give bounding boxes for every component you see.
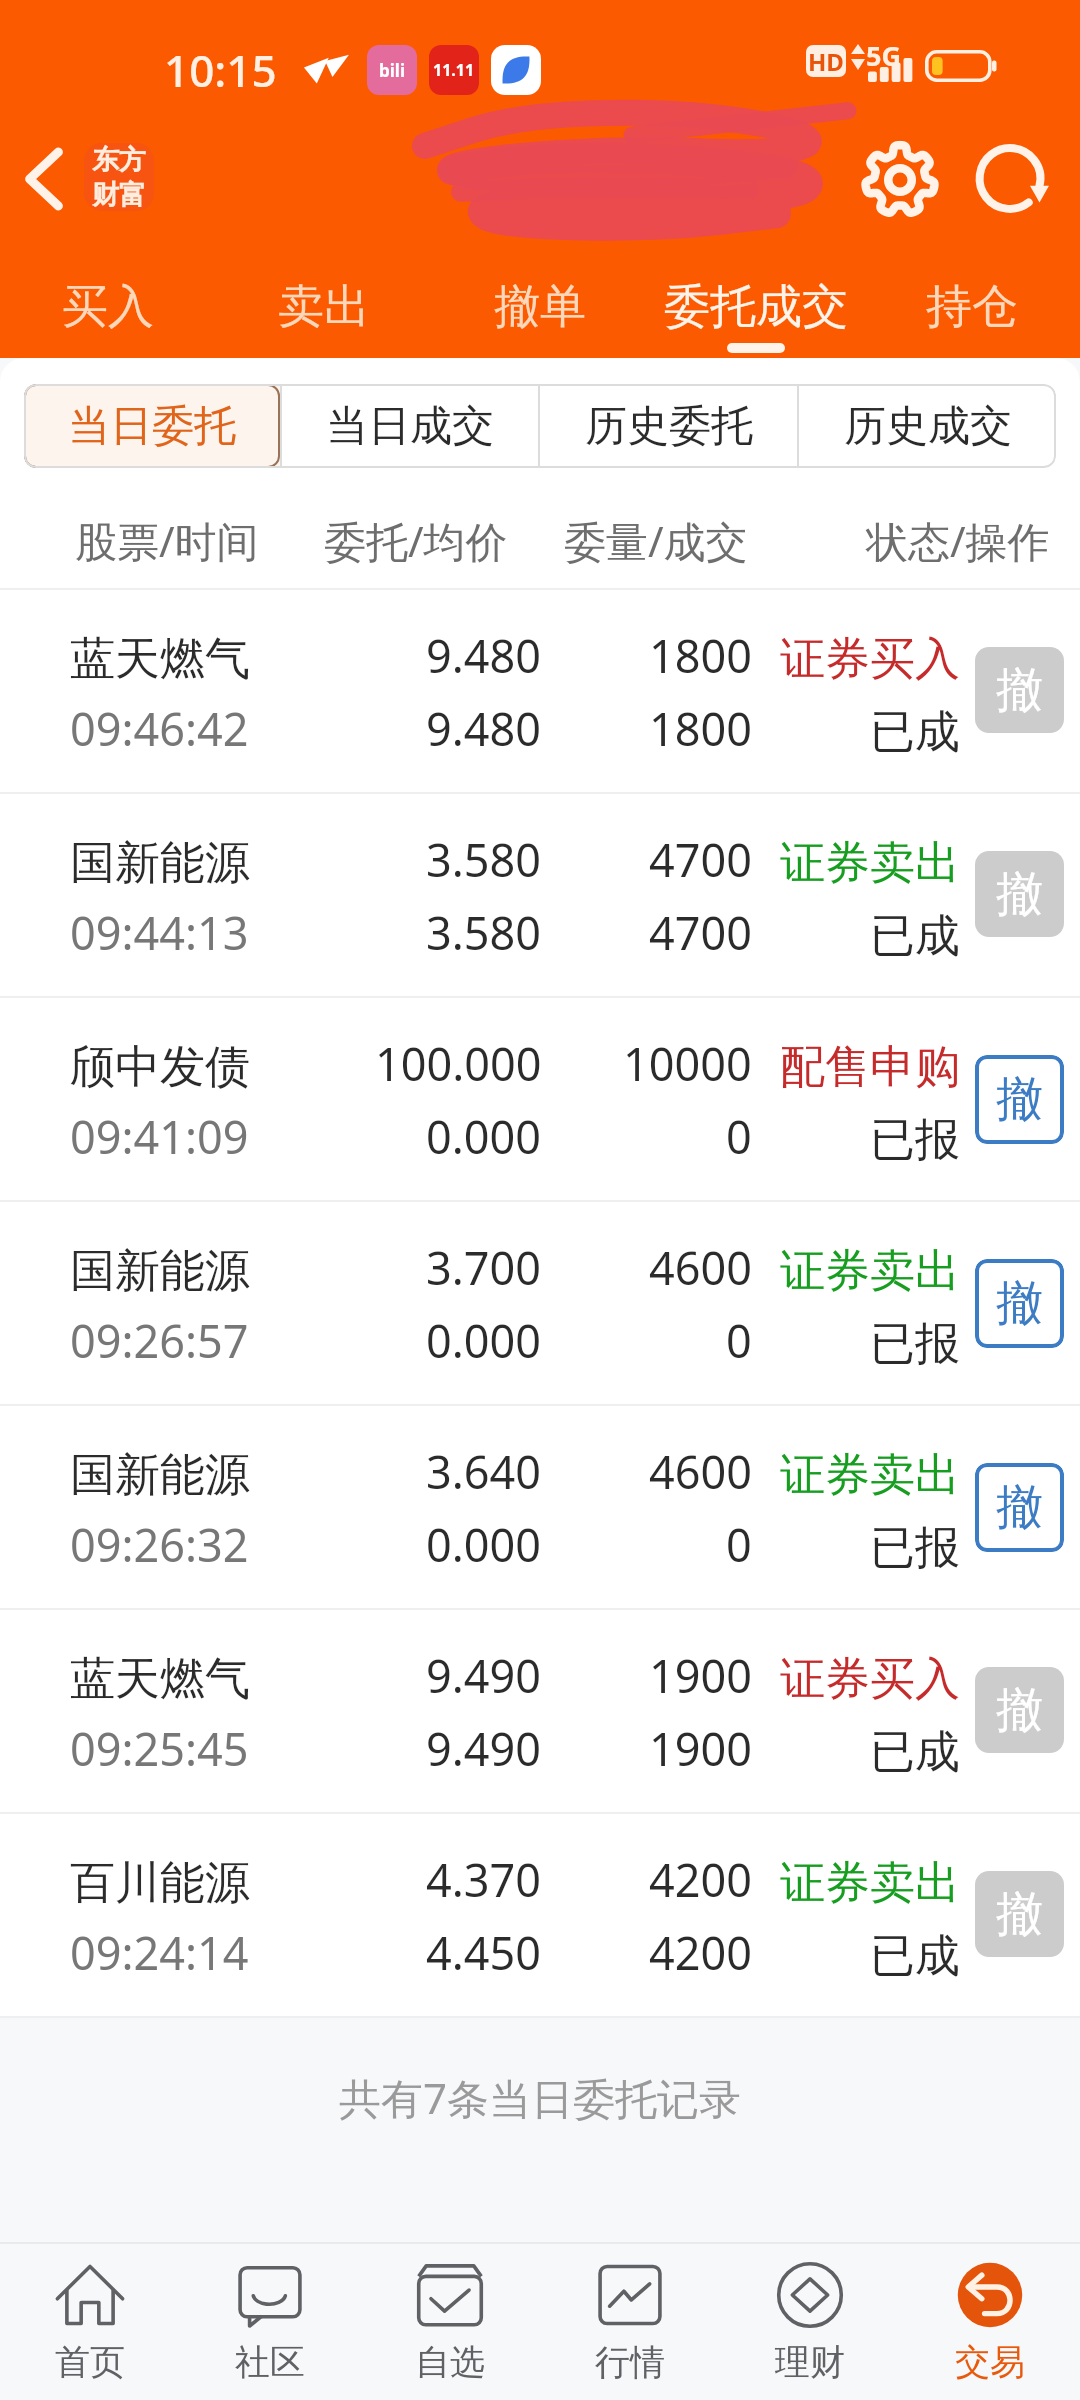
staticText: 百川能源 (70, 1855, 250, 1912)
button[interactable]: 当日成交 (282, 384, 538, 468)
staticText: 撤 (996, 1070, 1043, 1129)
staticText: 证券买入 (780, 631, 960, 688)
staticText: 4600 (649, 1441, 752, 1502)
staticText: 证券卖出 (780, 1855, 960, 1912)
staticText: 9.480 (426, 698, 542, 759)
staticText: 东方 (92, 143, 146, 177)
staticText: 已报 (870, 1520, 960, 1577)
button[interactable]: 历史成交 (799, 384, 1056, 468)
staticText: 国新能源 (70, 1243, 250, 1300)
staticText: 4200 (649, 1849, 752, 1910)
staticText: bili (379, 59, 405, 82)
staticText: 历史委托 (585, 400, 753, 453)
staticText: 09:44:13 (70, 902, 249, 963)
button[interactable]: 撤 (975, 647, 1064, 733)
button[interactable]: 撤 (975, 1463, 1064, 1552)
staticText: 委托成交 (664, 278, 848, 336)
button[interactable]: 撤 (975, 1871, 1064, 1957)
staticText: 1900 (649, 1645, 752, 1706)
staticText: 已报 (870, 1316, 960, 1373)
staticText: 自选 (415, 2340, 485, 2384)
button[interactable]: 撤单 (432, 262, 648, 362)
staticText: 已成 (870, 1724, 960, 1781)
staticText: 国新能源 (70, 835, 250, 892)
staticText: 11.11 (433, 59, 475, 81)
button[interactable]: Refresh (962, 132, 1058, 228)
staticText: 4.450 (426, 1922, 542, 1983)
staticText: 蓝天燃气 (70, 1651, 250, 1708)
staticText: 4700 (649, 829, 752, 890)
staticText: 3.700 (426, 1237, 542, 1298)
staticText: 09:24:14 (70, 1922, 249, 1983)
button[interactable]: 委托成交 (648, 262, 864, 362)
button[interactable]: 当日委托 (24, 384, 280, 468)
staticText: 撤 (996, 1274, 1043, 1333)
staticText: 证券卖出 (780, 835, 960, 892)
staticText: 撤 (996, 661, 1043, 720)
button[interactable]: 社区 (180, 2244, 360, 2400)
staticText: 撤 (996, 1885, 1043, 1944)
staticText: 证券卖出 (780, 1447, 960, 1504)
staticText: 09:25:45 (70, 1718, 249, 1779)
button[interactable]: 撤 (975, 851, 1064, 937)
button[interactable]: Back (4, 138, 88, 222)
staticText: 1800 (649, 625, 752, 686)
button[interactable]: 历史委托 (540, 384, 797, 468)
button[interactable]: 行情 (540, 2244, 720, 2400)
staticText: 撤 (996, 1681, 1043, 1740)
staticText: 持仓 (926, 278, 1018, 336)
button[interactable]: 撤 (975, 1667, 1064, 1753)
staticText: 证券买入 (780, 1651, 960, 1708)
staticText: 3.580 (426, 902, 542, 963)
button[interactable]: 首页 (0, 2244, 180, 2400)
staticText: 撤单 (494, 278, 586, 336)
staticText: 社区 (235, 2340, 305, 2384)
staticText: 首页 (55, 2340, 125, 2384)
button[interactable]: 撤 (975, 1259, 1064, 1348)
staticText: 股票/时间 (75, 512, 259, 569)
staticText: 财富 (92, 178, 146, 211)
staticText: 历史成交 (844, 400, 1012, 453)
staticText: 9.490 (426, 1645, 542, 1706)
button[interactable]: 理财 (720, 2244, 900, 2400)
staticText: 100.000 (375, 1033, 542, 1094)
staticText: 0.000 (426, 1106, 542, 1167)
staticText: 10000 (623, 1033, 752, 1094)
staticText: 0 (726, 1514, 752, 1575)
staticText: 5G (866, 37, 901, 74)
staticText: 4600 (649, 1237, 752, 1298)
staticText: 行情 (595, 2340, 665, 2384)
button[interactable]: 自选 (360, 2244, 540, 2400)
staticText: 已成 (870, 1928, 960, 1985)
staticText: 国新能源 (70, 1447, 250, 1504)
staticText: 委托/均价 (324, 512, 508, 569)
staticText: 0 (726, 1106, 752, 1167)
staticText: 已成 (870, 908, 960, 965)
staticText: 1800 (649, 698, 752, 759)
staticText: 卖出 (278, 278, 370, 336)
staticText: 理财 (775, 2340, 845, 2384)
button[interactable]: 交易 (900, 2244, 1080, 2400)
staticText: 委量/成交 (564, 512, 748, 569)
button[interactable]: 撤 (975, 1055, 1064, 1144)
staticText: 0.000 (426, 1310, 542, 1371)
staticText: 0 (726, 1310, 752, 1371)
button[interactable]: 卖出 (216, 262, 432, 362)
staticText: 9.490 (426, 1718, 542, 1779)
staticText: 0.000 (426, 1514, 542, 1575)
staticText: 证券卖出 (780, 1243, 960, 1300)
button[interactable]: 东方 (84, 143, 154, 211)
staticText: 交易 (955, 2340, 1025, 2384)
button[interactable]: 持仓 (864, 262, 1080, 362)
button[interactable]: Settings (852, 132, 948, 228)
staticText: 09:46:42 (70, 698, 249, 759)
staticText: 撤 (996, 865, 1043, 924)
staticText: 配售申购 (780, 1039, 960, 1096)
button[interactable]: 买入 (0, 262, 216, 362)
staticText: HD (808, 45, 844, 77)
staticText: 当日委托 (68, 400, 236, 453)
staticText: 10:15 (164, 40, 277, 100)
staticText: 已成 (870, 704, 960, 761)
staticText: 当日成交 (326, 400, 494, 453)
staticText: 09:26:32 (70, 1514, 249, 1575)
